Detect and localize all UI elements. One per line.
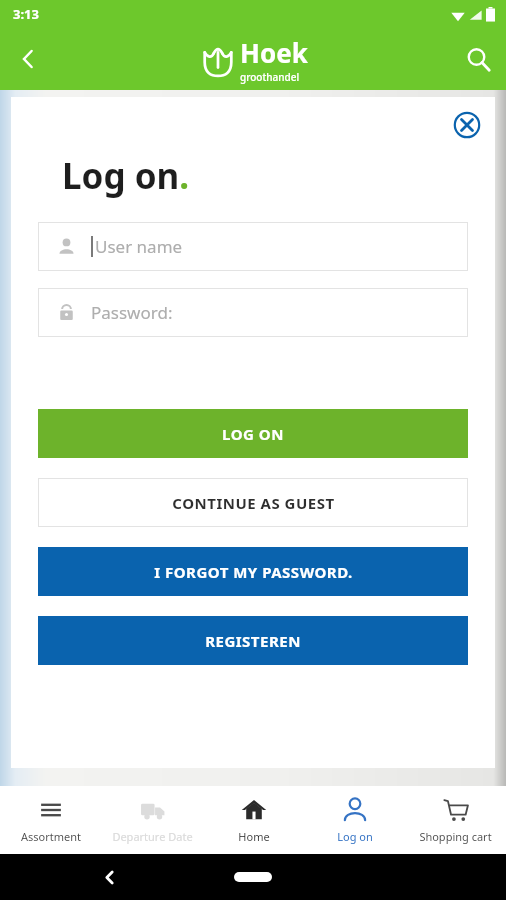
button[interactable]: REGISTEREN bbox=[38, 616, 468, 665]
button[interactable]: CONTINUE AS GUEST bbox=[38, 478, 468, 527]
button[interactable]: Home bbox=[234, 872, 272, 882]
staticText: Password: bbox=[91, 301, 173, 324]
staticText: Shopping cart bbox=[419, 829, 492, 844]
staticText: Hoek bbox=[240, 35, 308, 70]
button[interactable]: Close bbox=[447, 105, 487, 145]
button[interactable]: I FORGOT MY PASSWORD. bbox=[38, 547, 468, 596]
button[interactable]: Password: bbox=[38, 288, 468, 337]
staticText: LOG ON bbox=[222, 424, 284, 444]
button[interactable]: User name bbox=[38, 222, 468, 271]
button[interactable]: Search bbox=[450, 31, 506, 87]
staticText: REGISTEREN bbox=[205, 631, 301, 651]
staticText: Log on. bbox=[62, 152, 190, 200]
button[interactable]: LOG ON bbox=[38, 409, 468, 458]
staticText: I FORGOT MY PASSWORD. bbox=[154, 562, 353, 582]
staticText: Home bbox=[238, 829, 270, 844]
staticText: Departure Date bbox=[112, 829, 193, 844]
button[interactable]: Shopping cart bbox=[405, 786, 506, 854]
button[interactable]: Back bbox=[0, 31, 56, 87]
button[interactable]: Assortment bbox=[0, 786, 102, 854]
staticText: groothandel bbox=[240, 70, 300, 84]
staticText: User name bbox=[95, 235, 183, 258]
staticText: CONTINUE AS GUEST bbox=[172, 493, 335, 513]
button[interactable]: Back bbox=[92, 860, 126, 894]
button[interactable]: Departure Date bbox=[102, 786, 203, 854]
staticText: Assortment bbox=[21, 829, 81, 844]
button[interactable]: Home bbox=[203, 786, 304, 854]
button[interactable]: Hoek bbox=[199, 35, 308, 84]
staticText: Log on bbox=[337, 829, 373, 844]
staticText: 3:13 bbox=[13, 5, 39, 23]
button[interactable]: Log on bbox=[304, 786, 405, 854]
